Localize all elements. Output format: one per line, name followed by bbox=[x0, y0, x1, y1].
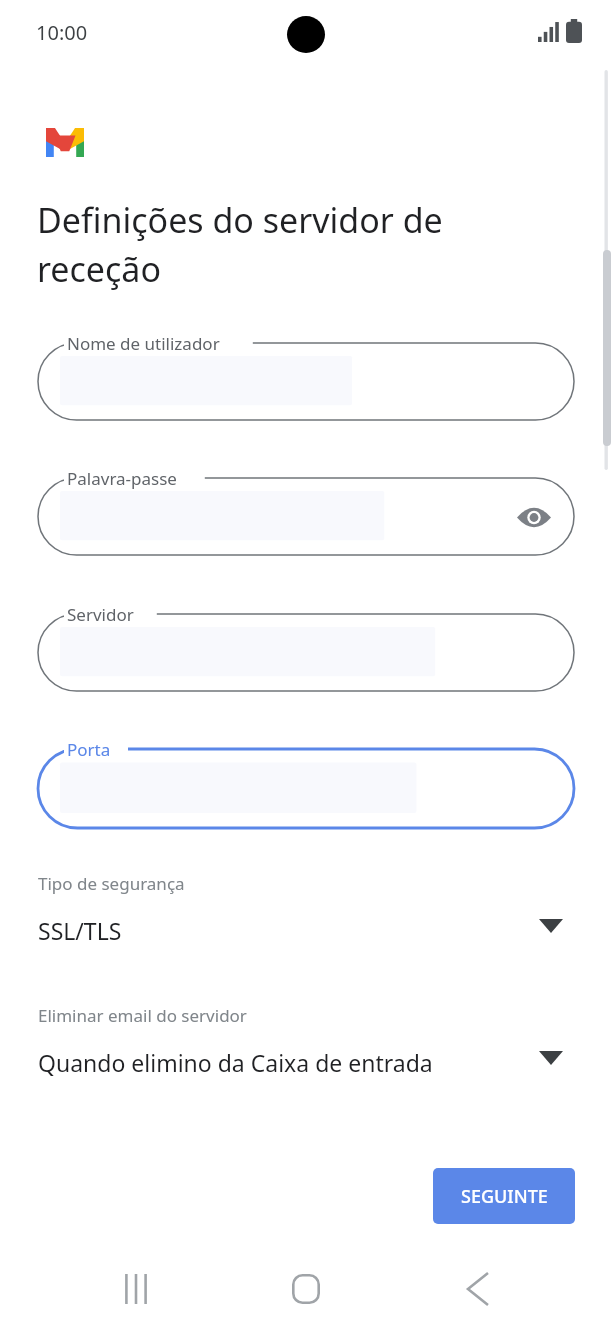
staticText: 10:00 bbox=[36, 19, 88, 46]
button[interactable]: Palavra-passe bbox=[38, 478, 574, 555]
button[interactable]: Porta bbox=[38, 749, 574, 828]
staticText: Palavra-passe bbox=[67, 467, 177, 490]
staticText: Tipo de segurança bbox=[38, 872, 185, 895]
button[interactable]: SEGUINTE bbox=[433, 1168, 575, 1224]
button[interactable]: Servidor bbox=[38, 614, 574, 691]
staticText: Servidor bbox=[67, 603, 134, 626]
button[interactable]: Mostrar palavra-passe bbox=[512, 495, 556, 539]
button[interactable]: Nome de utilizador bbox=[38, 343, 574, 420]
staticText: Porta bbox=[67, 738, 111, 761]
staticText: Eliminar email do servidor bbox=[38, 1004, 247, 1027]
button[interactable]: Tipo de segurança bbox=[38, 868, 574, 956]
staticText: Nome de utilizador bbox=[67, 332, 220, 355]
button[interactable]: Voltar bbox=[447, 1258, 509, 1320]
staticText: Definições do servidor de receção bbox=[37, 197, 443, 292]
staticText: Quando elimino da Caixa de entrada bbox=[38, 1047, 433, 1078]
staticText: SEGUINTE bbox=[461, 1184, 548, 1209]
button[interactable]: Início bbox=[275, 1258, 337, 1320]
staticText: SSL/TLS bbox=[38, 915, 122, 946]
button[interactable]: Eliminar email do servidor bbox=[38, 1000, 574, 1088]
button[interactable]: Recentes bbox=[105, 1258, 167, 1320]
